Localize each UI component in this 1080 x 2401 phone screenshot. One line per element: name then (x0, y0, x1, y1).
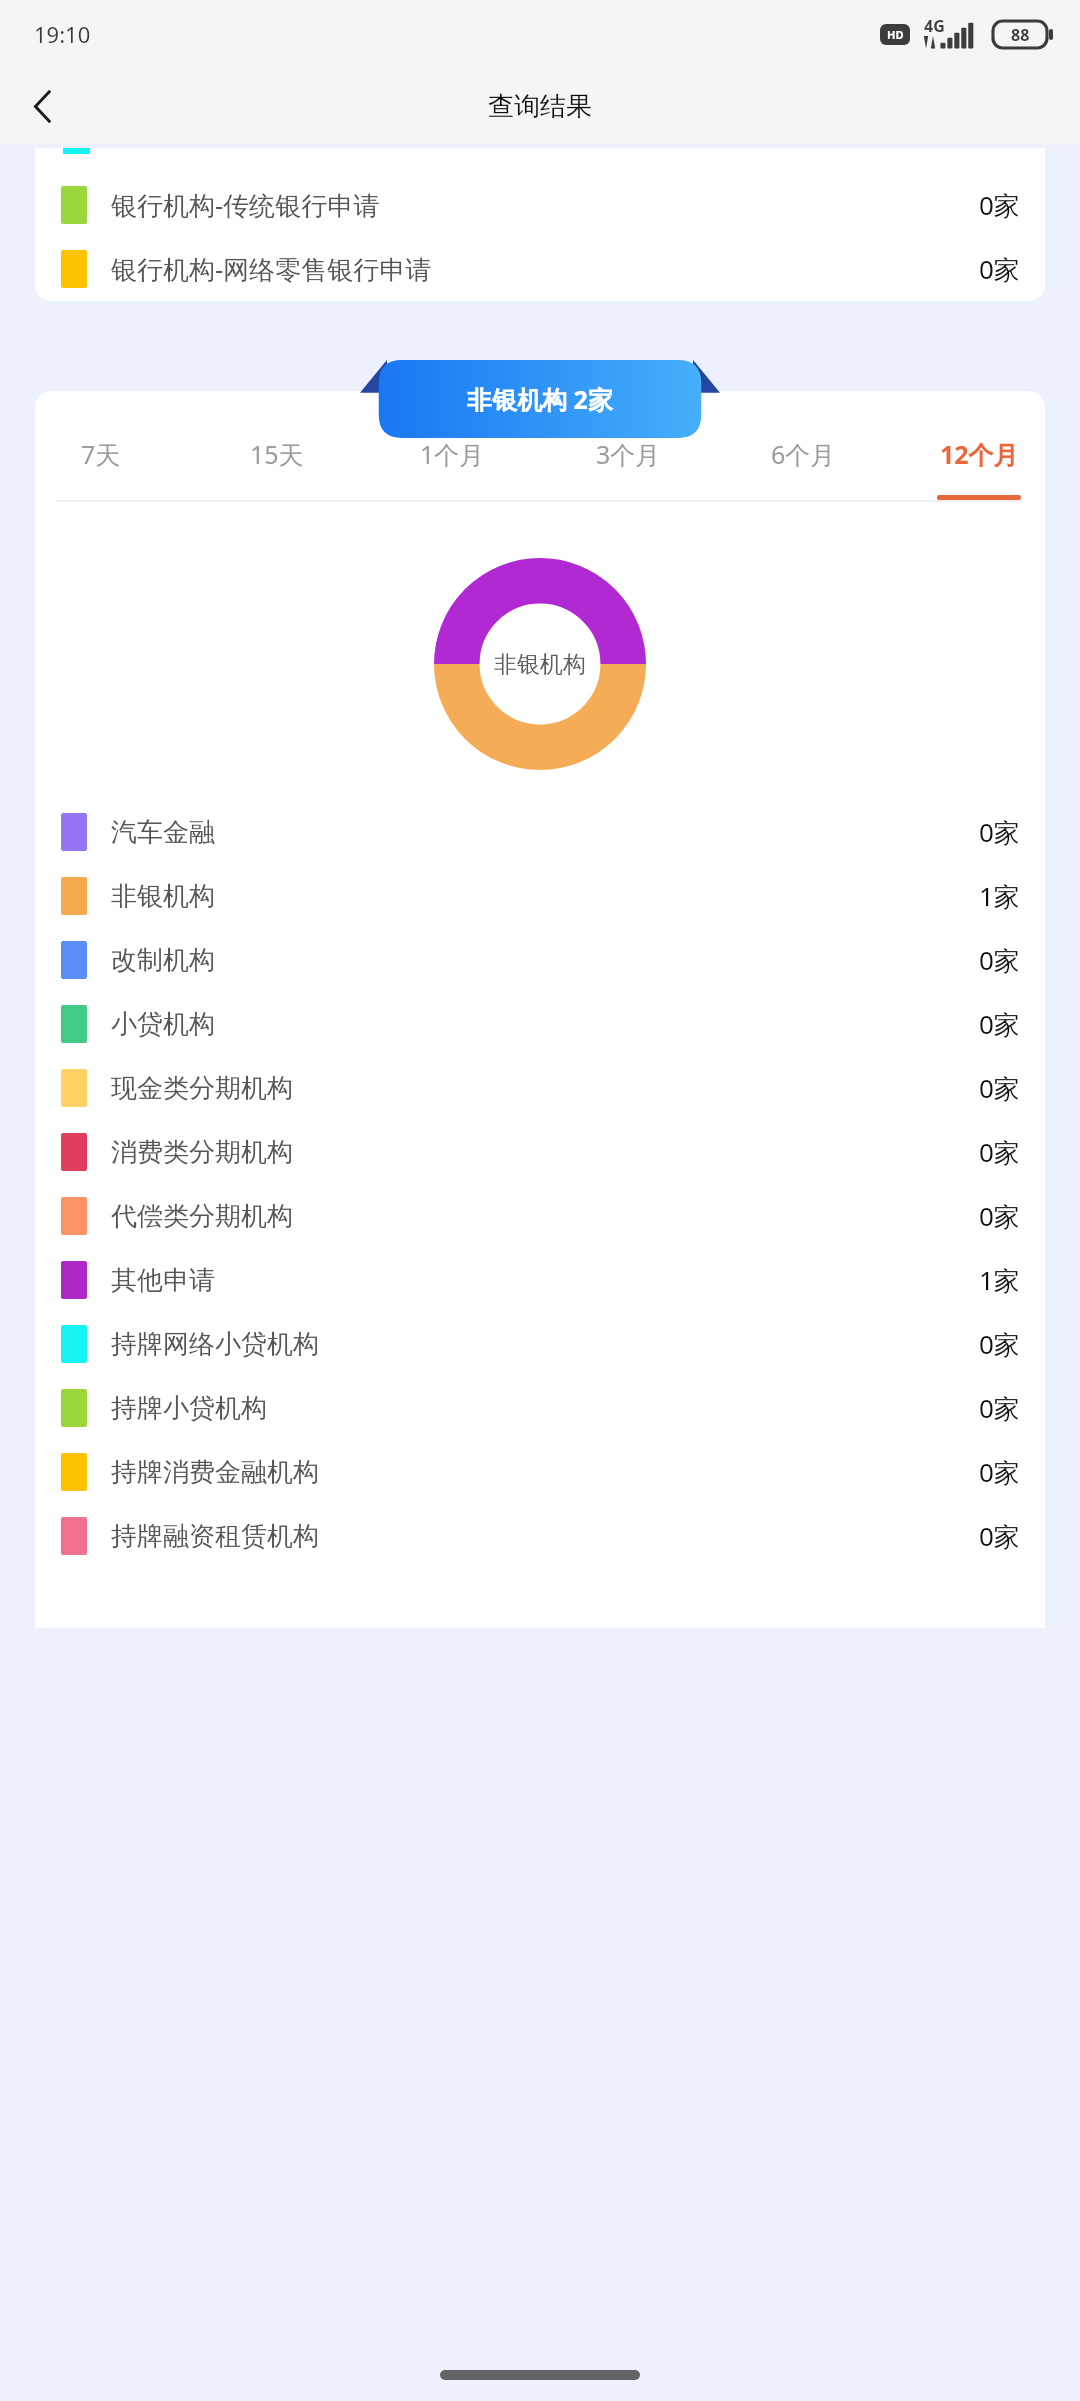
staticText: 15天 (250, 437, 304, 471)
button[interactable]: 现金类分期机构 (35, 1056, 1045, 1120)
button[interactable]: 6个月 (755, 437, 851, 500)
button[interactable]: 1个月 (404, 437, 500, 500)
staticText: 0家 (979, 1326, 1020, 1362)
button[interactable]: 3个月 (580, 437, 676, 500)
staticText: 88 (1011, 24, 1030, 46)
staticText: 0家 (979, 1070, 1020, 1106)
staticText: 非银机构 (111, 880, 215, 913)
staticText: 12个月 (940, 437, 1019, 471)
button[interactable]: 持牌网络小贷机构 (35, 1312, 1045, 1376)
staticText: 0家 (979, 1518, 1020, 1554)
staticText: 小贷机构 (111, 1008, 215, 1041)
staticText: 现金类分期机构 (111, 1072, 293, 1105)
staticText: 7天 (81, 437, 121, 471)
button[interactable]: 银行机构-网络零售银行申请 (35, 237, 1045, 301)
staticText: 改制机构 (111, 944, 215, 977)
staticText: 持牌小贷机构 (111, 1392, 267, 1425)
staticText: 持牌消费金融机构 (111, 1456, 319, 1489)
staticText: 0家 (979, 942, 1020, 978)
staticText: 0家 (979, 814, 1020, 850)
button[interactable]: 改制机构 (35, 928, 1045, 992)
button[interactable]: 15天 (229, 437, 325, 500)
staticText: 4G (924, 15, 945, 37)
button[interactable]: 其他申请 (35, 1248, 1045, 1312)
staticText: 1家 (979, 1262, 1020, 1298)
button[interactable]: 非银机构 2家 (360, 360, 720, 438)
button[interactable]: 非银机构 (35, 864, 1045, 928)
button[interactable]: 持牌消费金融机构 (35, 1440, 1045, 1504)
staticText: 消费类分期机构 (111, 1136, 293, 1169)
staticText: 0家 (979, 187, 1020, 223)
staticText: 代偿类分期机构 (111, 1200, 293, 1233)
button[interactable]: Back (12, 75, 74, 137)
staticText: 其他申请 (111, 1264, 215, 1297)
staticText: 汽车金融 (111, 816, 215, 849)
staticText: 0家 (979, 1006, 1020, 1042)
staticText: 查询结果 (488, 90, 592, 123)
staticText: 非银机构 2家 (467, 382, 613, 416)
button[interactable]: 代偿类分期机构 (35, 1184, 1045, 1248)
button[interactable]: 12个月 (931, 437, 1027, 500)
staticText: 3个月 (596, 437, 661, 471)
staticText: 0家 (979, 1134, 1020, 1170)
button[interactable]: 小贷机构 (35, 992, 1045, 1056)
staticText: 1个月 (420, 437, 485, 471)
staticText: 银行机构-传统银行申请 (111, 187, 380, 223)
staticText: 0家 (979, 1198, 1020, 1234)
staticText: 银行机构-网络零售银行申请 (111, 251, 432, 287)
staticText: 0家 (979, 251, 1020, 287)
staticText: 0家 (979, 1390, 1020, 1426)
button[interactable]: 银行机构-传统银行申请 (35, 173, 1045, 237)
staticText: HD (887, 27, 904, 42)
button[interactable]: 7天 (53, 437, 149, 500)
staticText: 0家 (979, 1454, 1020, 1490)
staticText: 持牌融资租赁机构 (111, 1520, 319, 1553)
button[interactable]: 持牌融资租赁机构 (35, 1504, 1045, 1568)
staticText: 19:10 (34, 19, 91, 49)
button[interactable]: 持牌小贷机构 (35, 1376, 1045, 1440)
staticText: 非银机构 (494, 650, 586, 679)
button[interactable]: 消费类分期机构 (35, 1120, 1045, 1184)
staticText: 6个月 (771, 437, 836, 471)
staticText: 1家 (979, 878, 1020, 914)
button[interactable]: 汽车金融 (35, 800, 1045, 864)
staticText: 持牌网络小贷机构 (111, 1328, 319, 1361)
